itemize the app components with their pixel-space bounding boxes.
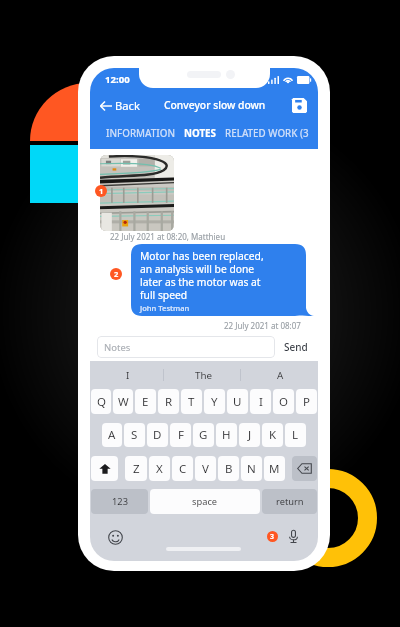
button[interactable]: O: [273, 389, 294, 414]
button[interactable]: Dictate: [284, 527, 303, 546]
staticText: John Testman: [140, 303, 190, 313]
button[interactable]: Shift: [91, 456, 118, 481]
button[interactable]: Emoji: [106, 528, 124, 546]
staticText: E: [142, 394, 149, 410]
staticText: K: [269, 427, 277, 443]
button[interactable]: space: [150, 489, 260, 514]
staticText: 22 July 2021 at 08:07: [224, 320, 301, 331]
button[interactable]: I: [90, 361, 166, 389]
button[interactable]: Notes: [97, 336, 275, 358]
staticText: H: [222, 427, 231, 443]
button[interactable]: INFORMATION: [105, 118, 177, 149]
staticText: 2: [114, 269, 119, 279]
staticText: L: [292, 427, 299, 443]
staticText: P: [303, 394, 310, 410]
staticText: U: [233, 394, 242, 410]
staticText: I: [259, 394, 263, 410]
button[interactable]: A: [242, 361, 318, 389]
staticText: D: [153, 427, 162, 443]
button[interactable]: A: [102, 423, 122, 447]
button[interactable]: return: [262, 489, 317, 514]
button[interactable]: X: [149, 456, 170, 481]
button[interactable]: K: [262, 423, 283, 447]
button[interactable]: F: [170, 423, 191, 447]
staticText: The: [195, 369, 213, 382]
staticText: Q: [97, 394, 106, 410]
staticText: T: [188, 394, 195, 410]
staticText: Z: [133, 461, 140, 477]
button[interactable]: C: [172, 456, 193, 481]
button[interactable]: 1: [95, 185, 107, 197]
staticText: X: [156, 461, 163, 477]
button[interactable]: 2: [110, 268, 122, 280]
staticText: RELATED WORK (3: [225, 127, 309, 140]
staticText: S: [131, 427, 138, 443]
button[interactable]: Back: [97, 96, 142, 115]
button[interactable]: Backspace: [292, 456, 317, 481]
staticText: Back: [115, 98, 140, 113]
button[interactable]: B: [218, 456, 239, 481]
staticText: A: [108, 427, 116, 443]
staticText: Notes: [104, 341, 131, 354]
staticText: 3: [270, 532, 275, 542]
button[interactable]: W: [113, 389, 133, 414]
staticText: A: [277, 369, 284, 382]
staticText: 123: [112, 495, 128, 508]
staticText: 22 July 2021 at 08:20, Matthieu: [110, 231, 226, 242]
button[interactable]: E: [135, 389, 156, 414]
button[interactable]: G: [193, 423, 214, 447]
button[interactable]: The: [166, 361, 242, 389]
staticText: N: [247, 461, 256, 477]
button[interactable]: Save: [289, 95, 309, 115]
button[interactable]: 3: [267, 531, 278, 542]
button[interactable]: M: [264, 456, 285, 481]
button[interactable]: NOTES: [183, 118, 217, 149]
button[interactable]: RELATED WORK (3: [224, 118, 310, 149]
staticText: J: [248, 427, 252, 443]
staticText: Motor has been replaced, an analysis wil…: [140, 249, 264, 302]
staticText: R: [165, 394, 173, 410]
button[interactable]: Q: [91, 389, 111, 414]
button[interactable]: J: [239, 423, 260, 447]
staticText: G: [199, 427, 208, 443]
button[interactable]: 123: [91, 489, 148, 514]
staticText: F: [178, 427, 184, 443]
button[interactable]: H: [216, 423, 237, 447]
staticText: Conveyor slow down: [164, 98, 266, 112]
button[interactable]: P: [296, 389, 317, 414]
button[interactable]: T: [181, 389, 202, 414]
button[interactable]: L: [285, 423, 306, 447]
staticText: B: [225, 461, 233, 477]
button[interactable]: Send: [282, 336, 310, 358]
staticText: INFORMATION: [106, 127, 176, 140]
staticText: V: [202, 461, 209, 477]
staticText: 12:00: [105, 73, 130, 86]
staticText: return: [276, 495, 304, 508]
staticText: M: [269, 461, 280, 477]
staticText: Send: [284, 340, 308, 354]
staticText: space: [192, 495, 218, 508]
button[interactable]: U: [227, 389, 248, 414]
button[interactable]: S: [124, 423, 145, 447]
button[interactable]: Y: [204, 389, 225, 414]
staticText: O: [279, 394, 288, 410]
button[interactable]: Z: [125, 456, 147, 481]
staticText: 1: [99, 186, 104, 196]
staticText: W: [118, 394, 129, 410]
staticText: C: [179, 461, 187, 477]
button[interactable]: D: [147, 423, 168, 447]
button[interactable]: R: [158, 389, 179, 414]
button[interactable]: V: [195, 456, 216, 481]
button[interactable]: I: [250, 389, 271, 414]
staticText: Y: [211, 394, 218, 410]
button[interactable]: Photo of conveyor: [100, 155, 174, 231]
staticText: I: [126, 369, 130, 382]
button[interactable]: N: [241, 456, 262, 481]
staticText: NOTES: [184, 127, 216, 140]
